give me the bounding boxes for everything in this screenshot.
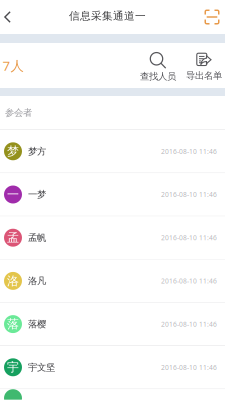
staticText: 洛凡 bbox=[28, 275, 46, 287]
button[interactable]: 一 bbox=[0, 173, 225, 216]
button[interactable] bbox=[0, 389, 225, 400]
staticText: 孟 bbox=[7, 230, 19, 245]
staticText: 洛 bbox=[7, 273, 19, 288]
button[interactable]: 查找人员 bbox=[135, 43, 181, 88]
staticText: 孟帆 bbox=[28, 232, 46, 243]
staticText: 落 bbox=[7, 317, 19, 331]
staticText: 2016-08-10 11:46 bbox=[161, 320, 217, 329]
staticText: 2016-08-10 11:46 bbox=[161, 276, 217, 285]
staticText: 2016-08-10 11:46 bbox=[161, 190, 217, 199]
staticText: 一梦 bbox=[28, 189, 46, 200]
staticText: 宇文坚 bbox=[28, 362, 55, 373]
staticText: 落樱 bbox=[28, 318, 46, 330]
button[interactable]: 洛 bbox=[0, 260, 225, 303]
staticText: 一 bbox=[7, 187, 19, 202]
staticText: 信息采集通道一 bbox=[69, 9, 146, 22]
button[interactable]: 落 bbox=[0, 303, 225, 346]
staticText: 导出名单 bbox=[186, 70, 222, 81]
button[interactable]: Scan code bbox=[201, 0, 223, 34]
button[interactable]: 孟 bbox=[0, 216, 225, 260]
button[interactable]: Back bbox=[0, 0, 15, 34]
staticText: 2016-08-10 11:46 bbox=[161, 147, 217, 156]
staticText: 梦 bbox=[7, 144, 19, 159]
button[interactable]: 宇 bbox=[0, 346, 225, 389]
staticText: 2016-08-10 11:46 bbox=[161, 233, 217, 242]
staticText: 参会者 bbox=[5, 107, 32, 118]
button[interactable]: 导出名单 bbox=[181, 43, 225, 88]
staticText: 宇 bbox=[7, 360, 19, 375]
button[interactable]: 梦 bbox=[0, 130, 225, 173]
staticText: 梦方 bbox=[28, 146, 46, 157]
staticText: 7人 bbox=[2, 57, 23, 74]
staticText: 2016-08-10 11:46 bbox=[161, 363, 217, 372]
staticText: 查找人员 bbox=[140, 71, 176, 82]
